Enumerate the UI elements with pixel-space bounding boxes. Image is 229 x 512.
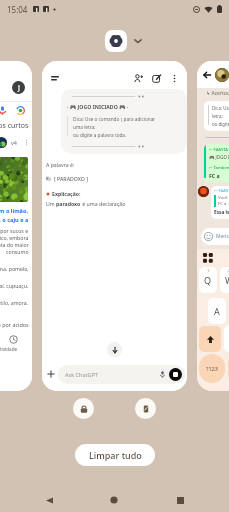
- staticText: ?123: [206, 365, 218, 372]
- staticText: Abacaxi, manga, goiaba, açaí, cupuaçu,: [0, 282, 29, 289]
- staticText: Mensagem: [216, 233, 229, 240]
- staticText: ⌐ Tambem: [209, 165, 229, 171]
- staticText: A: [214, 305, 220, 317]
- button[interactable]: New chat: [150, 72, 163, 85]
- staticText: Dica: Use o comando ⟨ para adicionar: [73, 116, 156, 122]
- staticText: ou digite a palavra toda.: [212, 121, 229, 127]
- staticText: Q: [204, 274, 212, 286]
- staticText: J: [18, 83, 20, 93]
- button[interactable]: Home: [101, 487, 127, 512]
- staticText: acerola, conhecidas por sucos e: [0, 227, 29, 234]
- staticText: pelo sabor característico, embora: [0, 234, 29, 241]
- staticText: As frutas cítricas incluem o limão,: [0, 207, 29, 215]
- button[interactable]: Back: [36, 487, 62, 512]
- staticText: · 🎮 JOGO INICIADO 🎮 ·: [67, 103, 129, 110]
- staticText: é uma declaração: [81, 200, 126, 207]
- button[interactable]: Menu: [49, 72, 61, 84]
- staticText: Essa letra: [214, 209, 229, 216]
- staticText: Um: [46, 200, 56, 207]
- button[interactable]: ChatGPT app icon: [105, 30, 127, 52]
- staticText: Vídeos curtos: [0, 121, 29, 131]
- staticText: 15:04: [7, 4, 28, 15]
- button[interactable]: More options: [168, 72, 181, 85]
- button[interactable]: Back: [201, 69, 212, 80]
- staticText: A palavra é:: [46, 161, 75, 168]
- staticText: W: [225, 274, 229, 286]
- staticText: FC a: [209, 172, 220, 179]
- button[interactable]: Scroll to bottom: [107, 342, 122, 357]
- staticText: Dica: Use o comando para: [212, 105, 229, 111]
- staticText: Limão, laranja, lima, tangerina, pomelo,: [0, 265, 29, 272]
- staticText: Atividade: [0, 346, 18, 352]
- button[interactable]: Google app: [0, 61, 32, 391]
- staticText: a laranja, a lima, o caju e a: [0, 216, 29, 224]
- staticText: ⌐ FAASTA: [209, 147, 229, 153]
- button[interactable]: WhatsApp: [197, 61, 229, 391]
- staticText: Você: [218, 195, 228, 201]
- staticText: ↳ Acertou!: [206, 90, 229, 97]
- button[interactable]: Stop: [169, 368, 182, 381]
- button[interactable]: Split screen: [135, 398, 156, 419]
- staticText: paradoxo: [56, 200, 81, 207]
- button[interactable]: Mensagem: [201, 228, 229, 245]
- button[interactable]: Shift: [199, 326, 221, 352]
- button[interactable]: Lock app: [73, 398, 94, 419]
- button[interactable]: W: [220, 267, 229, 293]
- staticText: Limpar tudo: [89, 449, 142, 461]
- staticText: Explicação:: [52, 190, 81, 197]
- staticText: FC a: [218, 201, 227, 207]
- button[interactable]: Z: [224, 326, 229, 352]
- button[interactable]: Recent apps: [167, 487, 193, 512]
- button[interactable]: Q: [199, 267, 217, 293]
- staticText: 🎮 JOGO INI: [209, 154, 229, 160]
- staticText: consumo: [6, 248, 29, 255]
- button[interactable]: ,: [228, 354, 229, 383]
- staticText: [ PARADOXO ]: [54, 175, 88, 182]
- staticText: v4: [11, 139, 17, 146]
- button[interactable]: Limpar tudo: [75, 444, 155, 466]
- button[interactable]: Attach: [44, 367, 58, 381]
- button[interactable]: Invite: [132, 72, 145, 85]
- staticText: ⌐ FAASTAS: [214, 188, 229, 194]
- button[interactable]: ChatGPT: [42, 61, 187, 391]
- staticText: As frutas cítricas são por ácidos: [0, 321, 29, 328]
- button[interactable]: A: [208, 298, 226, 324]
- staticText: 1: [207, 268, 210, 273]
- staticText: Morango, framboesa, mirtilo, amora.: [0, 299, 29, 306]
- staticText: uma letra;: [73, 124, 96, 130]
- staticText: 2: [228, 268, 229, 273]
- staticText: letra;: [212, 113, 223, 119]
- staticText: a laranja seja a fruta do maior: [0, 241, 29, 248]
- button[interactable]: ?123: [199, 354, 225, 383]
- button[interactable]: Ask ChatGPT: [58, 365, 185, 384]
- staticText: ou digite a palavra toda.: [73, 132, 127, 138]
- staticText: Ask ChatGPT: [65, 371, 98, 378]
